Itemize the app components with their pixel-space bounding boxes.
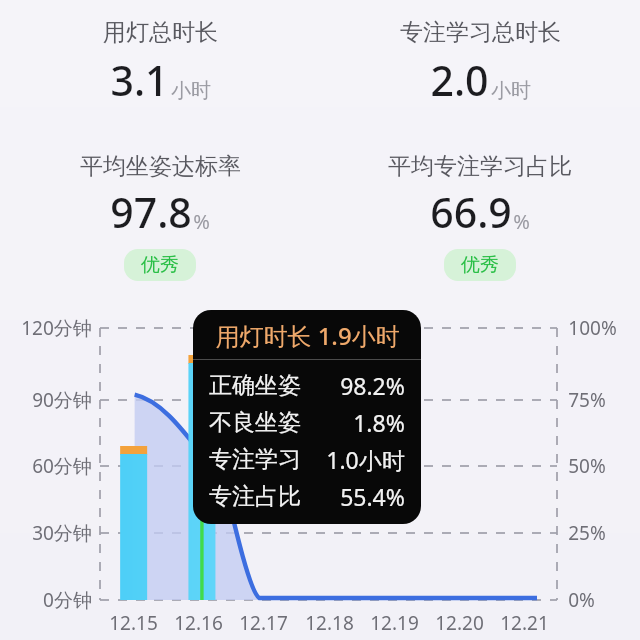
staticText: 12.20: [435, 610, 484, 636]
staticText: 小时: [171, 78, 211, 103]
staticText: 12.17: [239, 610, 288, 636]
button[interactable]: 平均专注学习占比: [320, 152, 640, 281]
staticText: %: [193, 208, 210, 235]
staticText: 专注占比: [209, 482, 301, 511]
staticText: 90分钟: [32, 387, 92, 413]
staticText: 专注学习: [209, 445, 301, 474]
staticText: 30分钟: [32, 520, 92, 546]
staticText: 平均坐姿达标率: [80, 152, 241, 181]
staticText: 1.8%: [353, 407, 405, 438]
staticText: 专注学习总时长: [400, 18, 561, 47]
staticText: 66.9: [430, 184, 512, 240]
staticText: 12.18: [305, 610, 354, 636]
staticText: 3.1: [110, 52, 169, 108]
button[interactable]: 用灯总时长: [0, 18, 320, 108]
staticText: %: [513, 208, 530, 235]
staticText: 1.0小时: [326, 444, 405, 475]
staticText: 55.4%: [340, 481, 405, 512]
staticText: 平均专注学习占比: [388, 152, 572, 181]
button[interactable]: 平均坐姿达标率: [0, 152, 320, 281]
staticText: 小时: [491, 78, 531, 103]
staticText: 正确坐姿: [209, 371, 301, 400]
staticText: 12.15: [109, 610, 158, 636]
button[interactable]: 优秀: [444, 249, 516, 281]
staticText: 2.0: [430, 52, 489, 108]
staticText: 优秀: [141, 253, 179, 277]
staticText: 用灯总时长: [103, 18, 218, 47]
staticText: 25%: [568, 520, 606, 546]
staticText: 60分钟: [32, 453, 92, 479]
staticText: 优秀: [461, 253, 499, 277]
staticText: 不良坐姿: [209, 408, 301, 437]
other: 每日用灯时长与专注占比图表: [0, 0, 640, 640]
staticText: 100%: [568, 315, 617, 341]
staticText: 12.21: [500, 610, 549, 636]
staticText: 97.8: [110, 184, 192, 240]
button[interactable]: 用灯时长 1.9小时: [193, 310, 421, 524]
button[interactable]: 优秀: [124, 249, 196, 281]
staticText: 12.16: [174, 610, 223, 636]
staticText: 120分钟: [21, 315, 92, 341]
button[interactable]: 专注学习总时长: [320, 18, 640, 108]
staticText: 用灯时长 1.9小时: [215, 319, 400, 352]
staticText: 50%: [568, 453, 606, 479]
staticText: 75%: [568, 387, 606, 413]
staticText: 98.2%: [340, 370, 405, 401]
staticText: 12.19: [370, 610, 419, 636]
staticText: 0分钟: [43, 587, 92, 613]
staticText: 0%: [568, 587, 595, 613]
